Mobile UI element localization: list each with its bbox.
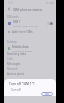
staticText: OK <box>45 92 49 96</box>
staticText: Network <box>7 67 18 71</box>
button[interactable]: Mobile data <box>4 44 56 53</box>
staticText: Calls <box>7 57 13 61</box>
staticText: SIM photos status <box>13 7 43 12</box>
staticText: Mobile data <box>12 45 29 49</box>
staticText: SIM cards <box>7 15 19 18</box>
staticText: Connect to mobile <box>12 49 33 52</box>
staticText: Messages <box>7 62 21 66</box>
staticText: Turn off <box>11 88 21 92</box>
staticText: SIM 1 <box>13 20 21 24</box>
staticText: Roaming data <box>7 52 26 56</box>
button[interactable]: Back <box>5 5 12 12</box>
staticText: Turn off "SIM 1"? <box>9 82 35 86</box>
staticText: 9:41 <box>8 1 14 5</box>
button[interactable]: OK <box>41 92 53 96</box>
button[interactable]: SIM 1 <box>4 19 56 28</box>
staticText: Carrier • 0491 570 156 <box>13 24 38 27</box>
staticText: Access point <box>7 72 24 76</box>
staticText: Settings <box>7 40 17 43</box>
button[interactable]: Add more SIMs <box>4 28 56 35</box>
button[interactable]: Toggle SIM <box>47 22 53 25</box>
staticText: Add more SIMs <box>12 30 33 34</box>
